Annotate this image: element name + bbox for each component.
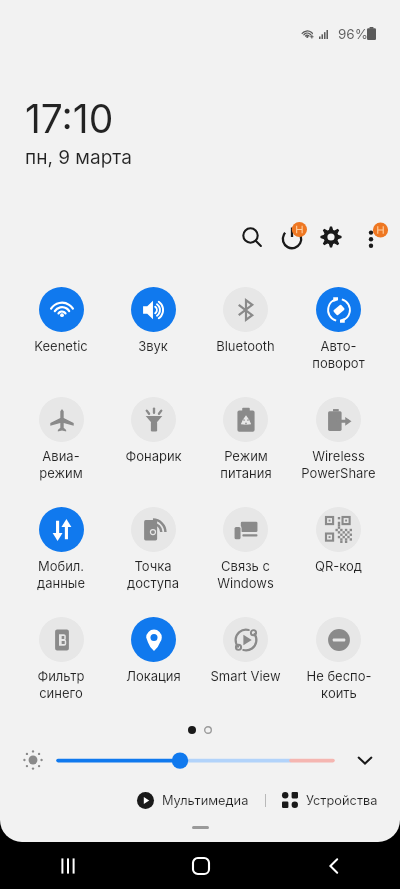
button[interactable]: Brightness	[20, 747, 46, 773]
button[interactable]: Home	[134, 842, 267, 889]
staticText: Связь с Windows	[217, 558, 274, 591]
staticText: QR-код	[315, 558, 362, 574]
button[interactable]: Expand	[349, 744, 381, 776]
button[interactable]: Search	[233, 218, 271, 256]
button[interactable]: Авто- поворот	[292, 287, 385, 397]
button[interactable]: More options	[355, 215, 393, 253]
button[interactable]: Авиа- режим	[15, 397, 107, 507]
button[interactable]: Smart View	[199, 617, 292, 727]
button[interactable]: Связь с Windows	[199, 507, 292, 617]
button[interactable]: Мобил. данные	[15, 507, 107, 617]
staticText: Мультимедиа	[162, 793, 249, 808]
button[interactable]: Не беспо- коить	[292, 617, 385, 727]
button[interactable]: Устройства	[279, 789, 381, 811]
button[interactable]: Keenetic	[15, 287, 107, 397]
button[interactable]: Мультимедиа	[134, 789, 252, 812]
staticText: Локация	[126, 668, 181, 684]
staticText: Мобил. данные	[37, 558, 85, 591]
staticText: Точка доступа	[127, 558, 179, 591]
button[interactable]: QR-код	[292, 507, 385, 617]
button[interactable]: Settings	[312, 218, 350, 256]
button[interactable]: Page 2	[204, 726, 212, 734]
button[interactable]: Точка доступа	[107, 507, 199, 617]
staticText: Bluetooth	[216, 338, 275, 354]
staticText: пн, 9 марта	[25, 146, 132, 169]
staticText: Режим питания	[220, 448, 272, 481]
staticText: Фонарик	[125, 448, 182, 464]
button[interactable]: Recents	[0, 842, 134, 889]
staticText: Wireless PowerShare	[301, 448, 376, 481]
button[interactable]: Bluetooth	[199, 287, 292, 397]
staticText: Фильтр синего	[37, 668, 85, 701]
staticText: 17:10	[25, 95, 114, 142]
button[interactable]: Фонарик	[107, 397, 199, 507]
staticText: 96%	[338, 26, 368, 42]
button[interactable]: Page 1	[188, 726, 196, 734]
staticText: Авто- поворот	[312, 338, 365, 371]
button[interactable]: Локация	[107, 617, 199, 727]
button[interactable]: Back	[267, 842, 400, 889]
button[interactable]: Режим питания	[199, 397, 292, 507]
button[interactable]: Power	[274, 215, 312, 253]
staticText: Keenetic	[34, 338, 88, 354]
staticText: Smart View	[210, 668, 281, 684]
staticText: Не беспо- коить	[306, 668, 372, 701]
button[interactable]: Wireless PowerShare	[292, 397, 385, 507]
button[interactable]: Звук	[107, 287, 199, 397]
staticText: Звук	[138, 338, 168, 354]
staticText: Авиа- режим	[39, 448, 83, 481]
staticText: Устройства	[306, 793, 378, 808]
button[interactable]: Фильтр синего	[15, 617, 107, 727]
